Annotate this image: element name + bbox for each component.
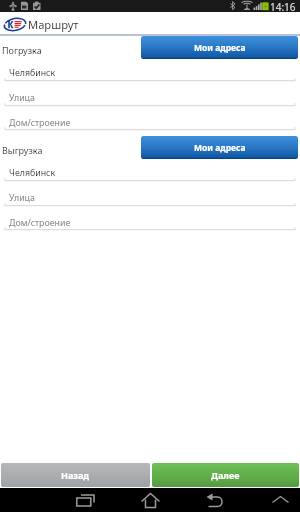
button[interactable]: Hide navigation bbox=[264, 488, 296, 512]
staticText: Дом/строение bbox=[9, 117, 71, 129]
staticText: Челябинск bbox=[9, 167, 56, 179]
staticText: Далее bbox=[211, 469, 240, 481]
staticText: Улица bbox=[9, 192, 35, 204]
staticText: Погрузка bbox=[2, 44, 42, 56]
staticText: Улица bbox=[9, 92, 35, 104]
button[interactable]: Home bbox=[134, 488, 166, 512]
staticText: Дом/строение bbox=[9, 217, 71, 229]
staticText: Назад bbox=[61, 469, 90, 481]
button[interactable]: Мои адреса bbox=[141, 136, 298, 159]
staticText: 14:16 bbox=[270, 0, 296, 12]
button[interactable]: Мои адреса bbox=[141, 36, 298, 59]
button[interactable]: Назад bbox=[1, 463, 150, 487]
staticText: Мои адреса bbox=[194, 142, 246, 154]
staticText: Челябинск bbox=[9, 67, 56, 79]
staticText: Мои адреса bbox=[194, 42, 246, 54]
button[interactable]: Далее bbox=[152, 463, 299, 487]
button[interactable]: Recents bbox=[69, 488, 101, 512]
button[interactable]: Back bbox=[199, 488, 231, 512]
staticText: Выгрузка bbox=[2, 144, 43, 156]
staticText: Маршрут bbox=[28, 17, 79, 32]
